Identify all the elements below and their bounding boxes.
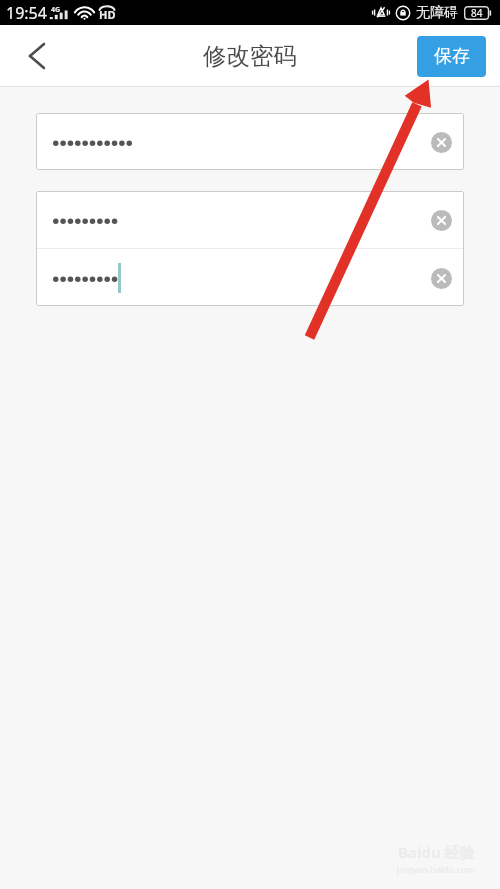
- staticText: 19:54: [6, 2, 47, 24]
- button[interactable]: Clear text: [36, 113, 464, 170]
- button[interactable]: Back: [0, 25, 74, 87]
- staticText: jingyan.baidu.com: [397, 863, 475, 875]
- staticText: 无障碍: [416, 4, 458, 22]
- button[interactable]: Clear text: [426, 263, 456, 293]
- staticText: 修改密码: [203, 41, 297, 71]
- staticText: 4G: [51, 5, 61, 15]
- button[interactable]: 保存: [417, 36, 486, 77]
- button[interactable]: Clear text: [426, 205, 456, 235]
- button[interactable]: Clear text: [426, 127, 456, 157]
- button[interactable]: Clear text: [36, 249, 464, 306]
- staticText: Baidu 经验: [398, 842, 475, 862]
- staticText: HD: [99, 7, 116, 22]
- staticText: 84: [471, 6, 483, 20]
- button[interactable]: Clear text: [36, 191, 464, 248]
- staticText: 保存: [434, 45, 470, 68]
